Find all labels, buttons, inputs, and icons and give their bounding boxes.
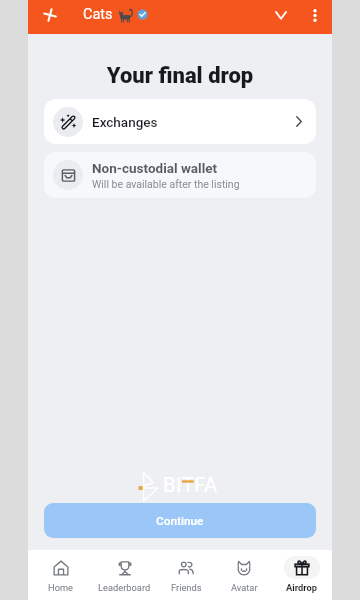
button[interactable]: Continue [44,503,316,538]
button[interactable]: Avatar [216,550,272,600]
button[interactable]: Friends [156,550,216,600]
staticText: Will be available after the listing [92,178,240,190]
button[interactable]: Home [28,550,93,600]
staticText: Continue [156,514,204,528]
button[interactable]: Add [37,2,63,28]
staticText: Leaderboard [98,582,151,593]
staticText: BITFA [163,473,218,497]
button[interactable]: Leaderboard [93,550,156,600]
button[interactable]: Airdrop [272,550,332,600]
button[interactable]: Non-custodial wallet [44,152,316,198]
staticText: Exchanges [92,114,158,130]
staticText: Avatar [231,582,258,593]
staticText: Cats [83,6,113,23]
button[interactable]: Expand [268,2,294,28]
button[interactable]: Exchanges [44,99,316,144]
staticText: Your final drop [28,63,332,89]
button[interactable]: More options [302,2,328,28]
staticText: Friends [171,582,202,593]
staticText: Airdrop [286,582,318,593]
staticText: Non-custodial wallet [92,160,218,176]
staticText: Home [48,582,74,593]
